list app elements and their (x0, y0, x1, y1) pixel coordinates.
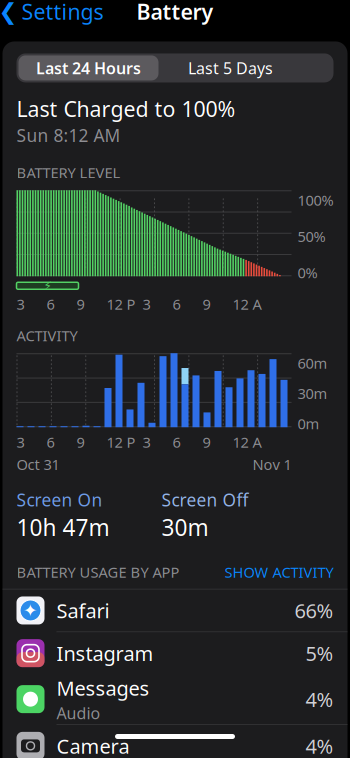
staticText: BATTERY USAGE BY APP (16, 562, 179, 582)
staticText: 6 (172, 294, 180, 314)
staticText: 12 A (232, 294, 261, 314)
staticText: 3 (16, 294, 24, 314)
button[interactable]: Last 24 Hours (16, 53, 333, 82)
staticText: SHOW ACTIVITY (224, 562, 333, 582)
staticText: 60m (297, 353, 327, 373)
staticText: BATTERY LEVEL (16, 163, 120, 182)
staticText: Messages (56, 675, 149, 701)
staticText: 0% (297, 263, 317, 282)
staticText: 30m (297, 383, 327, 403)
staticText: Last 24 Hours (36, 57, 141, 78)
staticText: ⚡︎ (43, 279, 51, 292)
button[interactable]: Camera (2, 725, 347, 758)
staticText: Settings (21, 0, 103, 26)
staticText: Audio (56, 702, 100, 723)
staticText: 30m (161, 512, 208, 542)
staticText: 4% (305, 733, 333, 758)
staticText: 6 (46, 294, 54, 314)
staticText: Sun 8:12 AM (16, 124, 120, 147)
staticText: 0m (297, 414, 319, 433)
staticText: Screen Off (161, 488, 248, 511)
staticText: 3 (142, 294, 150, 314)
staticText: ❮ (0, 0, 17, 24)
staticText: 12 P (106, 432, 135, 452)
staticText: 4% (305, 686, 333, 712)
button[interactable]: ✦ (2, 589, 347, 632)
staticText: Last 5 Days (188, 57, 273, 78)
staticText: 5% (305, 640, 333, 666)
staticText: Camera (56, 733, 129, 758)
staticText: 9 (76, 432, 84, 452)
staticText: 100% (297, 190, 333, 210)
button[interactable]: Instagram (2, 632, 347, 674)
staticText: Instagram (56, 640, 153, 666)
staticText: 9 (202, 294, 210, 314)
staticText: 66% (294, 597, 333, 624)
staticText: ACTIVITY (16, 326, 77, 345)
staticText: Nov 1 (252, 455, 291, 474)
staticText: Battery (136, 0, 213, 26)
staticText: 12 A (232, 432, 261, 452)
staticText: 6 (172, 432, 180, 452)
staticText: Safari (56, 597, 109, 624)
staticText: 6 (46, 432, 54, 452)
staticText: 9 (76, 294, 84, 314)
staticText: 12 P (106, 294, 135, 314)
staticText: Oct 31 (16, 455, 59, 474)
button[interactable]: ❮ (0, 0, 115, 30)
staticText: Last Charged to 100% (16, 94, 235, 123)
staticText: 3 (16, 432, 24, 452)
staticText: 50% (297, 226, 325, 246)
button[interactable]: Messages (2, 674, 347, 725)
staticText: 10h 47m (16, 512, 109, 542)
staticText: Screen On (16, 488, 102, 511)
staticText: 3 (142, 432, 150, 452)
staticText: 9 (202, 432, 210, 452)
staticText: ✦ (23, 601, 38, 620)
button[interactable]: SHOW ACTIVITY (224, 562, 333, 582)
